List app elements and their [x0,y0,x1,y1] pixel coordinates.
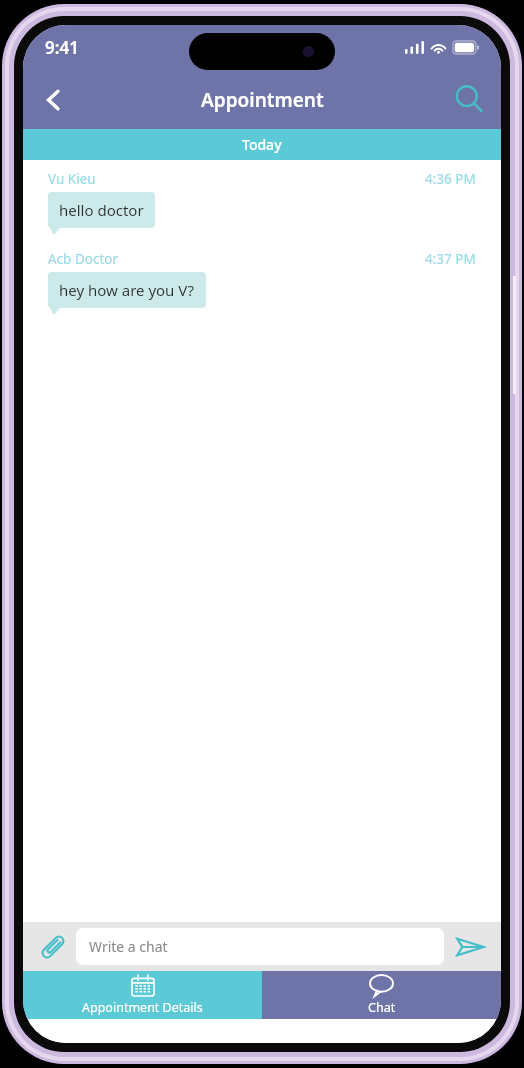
button[interactable]: Write a chat [76,928,444,965]
button[interactable]: Attach file [32,926,74,968]
button[interactable]: Send [448,925,492,969]
staticText: hello doctor [59,200,144,220]
button[interactable]: Chat [262,971,501,1019]
button[interactable]: Back [23,71,85,129]
staticText: Acb Doctor [48,250,119,268]
staticText: Write a chat [89,937,168,956]
staticText: Chat [368,999,396,1016]
staticText: 9:41 [45,36,79,59]
staticText: Appointment Details [82,999,203,1016]
staticText: Vu Kieu [48,170,96,188]
button[interactable]: Appointment Details [23,971,262,1019]
staticText: Appointment [201,87,324,113]
button[interactable]: Search [439,71,501,129]
staticText: hey how are you V? [59,280,195,300]
staticText: 4:37 PM [425,250,476,268]
button[interactable]: hello doctor [48,192,155,228]
button[interactable]: hey how are you V? [48,272,206,308]
staticText: Today [242,135,282,154]
staticText: 4:36 PM [425,170,476,188]
